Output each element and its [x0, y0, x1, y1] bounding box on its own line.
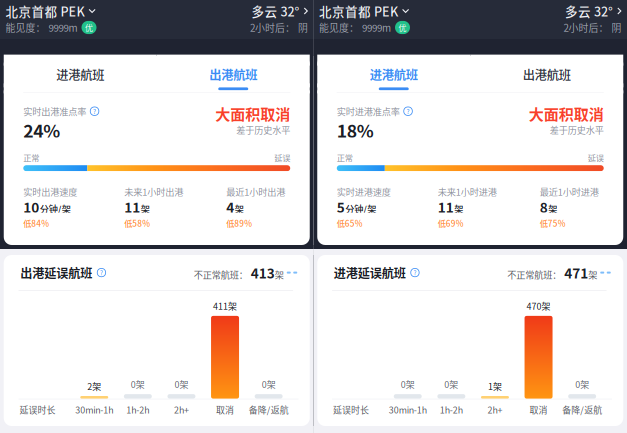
staticText: 分钟/架 — [345, 202, 376, 215]
staticText: 30min-1h — [75, 403, 113, 416]
staticText: 架 — [548, 202, 557, 215]
staticText: 差于历史水平 — [550, 123, 604, 136]
staticText: 出港航班 — [523, 66, 571, 83]
staticText: 大面积取消 — [529, 103, 604, 125]
staticText: 不正常航班： — [507, 268, 561, 281]
staticText: 多云 32° — [565, 2, 613, 20]
staticText: 架 — [588, 268, 597, 281]
staticText: 阴 — [298, 20, 308, 35]
staticText: 多云 32° — [252, 2, 300, 20]
staticText: ? — [407, 107, 410, 116]
staticText: 北京首都 PEK — [319, 2, 398, 20]
staticText: 5 — [337, 197, 345, 217]
staticText: 实时出港准点率 — [23, 104, 86, 118]
staticText: 2h+ — [174, 403, 189, 416]
staticText: 能见度： — [5, 20, 45, 35]
button[interactable]: 多云 32° — [565, 2, 621, 20]
staticText: 取消 — [529, 403, 547, 416]
staticText: 2架 — [87, 379, 101, 392]
staticText: ? — [100, 268, 103, 277]
button[interactable]: 不正常航班： — [194, 263, 297, 282]
staticText: 低75% — [540, 217, 566, 229]
button[interactable]: 北京首都 PEK — [319, 2, 409, 20]
staticText: 延误时长 — [20, 403, 56, 416]
staticText: 架 — [454, 202, 463, 215]
staticText: 延误 — [274, 152, 290, 164]
staticText: 大面积取消 — [215, 103, 290, 125]
staticText: 实时进港速度 — [337, 185, 391, 198]
staticText: 优 — [85, 22, 93, 33]
staticText: 正常 — [23, 152, 39, 164]
staticText: 出港航班 — [209, 66, 257, 83]
staticText: 分钟/架 — [40, 202, 71, 215]
staticText: 能见度： — [319, 20, 359, 35]
staticText: 471 — [564, 263, 588, 282]
staticText: 未来1小时出港 — [124, 185, 183, 198]
staticText: 延误时长 — [333, 403, 369, 416]
staticText: 最近1小时出港 — [226, 185, 285, 198]
staticText: 出港延误航班 — [20, 264, 92, 281]
staticText: 不正常航班： — [194, 268, 248, 281]
button[interactable]: 出港航班 — [470, 56, 623, 92]
staticText: 0架 — [131, 378, 145, 390]
staticText: 北京首都 PEK — [5, 2, 84, 20]
button[interactable]: 不正常航班： — [507, 263, 611, 282]
staticText: 2h+ — [487, 403, 502, 416]
staticText: 进港航班 — [370, 66, 418, 83]
staticText: 0架 — [262, 378, 276, 390]
staticText: 取消 — [216, 403, 234, 416]
staticText: 0架 — [575, 378, 589, 390]
button[interactable]: 北京首都 PEK — [5, 2, 96, 20]
staticText: 24% — [23, 117, 60, 143]
staticText: 阴 — [611, 20, 621, 35]
staticText: 未来1小时进港 — [438, 185, 497, 198]
staticText: 11 — [124, 197, 140, 217]
staticText: 11 — [438, 197, 454, 217]
staticText: 备降/返航 — [562, 403, 602, 416]
staticText: 1h-2h — [440, 403, 463, 416]
staticText: 架 — [141, 202, 150, 215]
staticText: 10 — [23, 197, 39, 217]
staticText: 0架 — [444, 378, 458, 390]
staticText: 正常 — [337, 152, 353, 164]
staticText: 18% — [337, 117, 374, 143]
staticText: 411架 — [213, 299, 237, 312]
staticText: 备降/返航 — [249, 403, 289, 416]
button[interactable]: 进港航班 — [4, 56, 157, 92]
button[interactable]: 多云 32° — [252, 2, 308, 20]
staticText: 低65% — [337, 217, 363, 229]
staticText: 8 — [540, 197, 548, 217]
staticText: 延误 — [588, 152, 604, 164]
staticText: 470架 — [526, 299, 550, 312]
button[interactable]: 进港航班 — [317, 56, 470, 92]
staticText: 架 — [235, 202, 244, 215]
staticText: 低89% — [226, 217, 252, 229]
staticText: 0架 — [401, 378, 415, 390]
staticText: ? — [93, 107, 96, 116]
button[interactable]: 出港航班 — [157, 56, 310, 92]
staticText: 1h-2h — [126, 403, 149, 416]
staticText: 低69% — [438, 217, 464, 229]
staticText: 低58% — [124, 217, 150, 229]
staticText: 实时进港准点率 — [337, 104, 400, 118]
staticText: 架 — [275, 268, 284, 281]
staticText: 1架 — [488, 379, 502, 392]
staticText: 4 — [226, 197, 234, 217]
staticText: 低84% — [23, 217, 49, 229]
staticText: 413 — [251, 263, 275, 282]
staticText: 差于历史水平 — [236, 123, 290, 136]
staticText: 实时出港速度 — [23, 185, 77, 198]
staticText: 进港延误航班 — [334, 264, 406, 281]
staticText: 0架 — [174, 378, 188, 390]
staticText: 进港航班 — [56, 66, 104, 83]
staticText: 最近1小时进港 — [540, 185, 599, 198]
staticText: ? — [413, 268, 416, 277]
staticText: 优 — [398, 22, 406, 33]
staticText: 9999m — [48, 20, 77, 35]
staticText: 30min-1h — [389, 403, 427, 416]
staticText: 2小时后： — [250, 20, 295, 35]
staticText: 2小时后： — [563, 20, 608, 35]
staticText: 9999m — [362, 20, 391, 35]
